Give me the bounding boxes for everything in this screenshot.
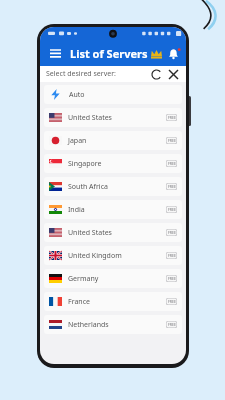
button[interactable]: Singapore (44, 154, 182, 173)
staticText: Singapore (68, 159, 102, 169)
staticText: Select desired server: (46, 69, 116, 79)
staticText: FREE (168, 322, 176, 327)
button[interactable]: Japan (44, 131, 182, 150)
staticText: France (68, 297, 90, 307)
button[interactable]: Premium (148, 45, 165, 62)
staticText: United Kingdom (68, 251, 122, 261)
staticText: FREE (168, 115, 176, 120)
button[interactable]: Notifications (168, 45, 179, 62)
button[interactable]: France (44, 292, 182, 311)
staticText: FREE (168, 253, 176, 258)
staticText: FREE (168, 276, 176, 281)
staticText: List of Servers (70, 46, 148, 61)
button[interactable]: United States (44, 108, 182, 127)
button[interactable]: Germany (44, 269, 182, 288)
staticText: United States (68, 113, 112, 123)
button[interactable]: Auto (44, 85, 182, 104)
staticText: Germany (68, 274, 99, 284)
button[interactable]: United States (44, 223, 182, 242)
staticText: FREE (168, 299, 176, 304)
staticText: India (68, 205, 85, 215)
staticText: FREE (168, 184, 176, 189)
button[interactable]: South Africa (44, 177, 182, 196)
staticText: FREE (168, 207, 176, 212)
staticText: South Africa (68, 182, 108, 192)
button[interactable]: United Kingdom (44, 246, 182, 265)
staticText: United States (68, 228, 112, 238)
staticText: Netherlands (68, 320, 109, 330)
staticText: FREE (168, 161, 176, 166)
button[interactable]: Netherlands (44, 315, 182, 334)
button[interactable]: Close (167, 68, 180, 81)
staticText: Japan (68, 136, 87, 146)
button[interactable]: Refresh (150, 68, 163, 81)
staticText: FREE (168, 230, 176, 235)
staticText: Auto (69, 90, 85, 100)
button[interactable]: India (44, 200, 182, 219)
button[interactable]: Open navigation menu (47, 45, 63, 61)
staticText: FREE (168, 138, 176, 143)
